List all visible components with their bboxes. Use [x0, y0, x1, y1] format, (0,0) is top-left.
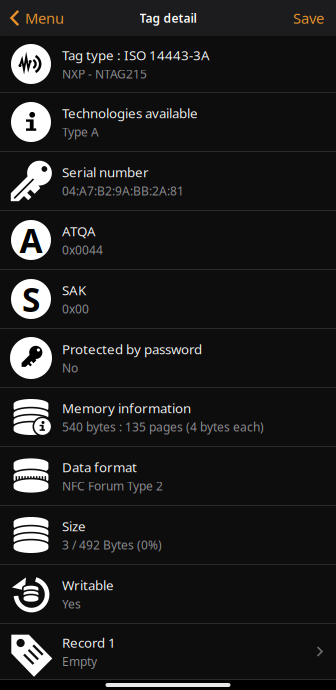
staticText: S — [22, 277, 40, 321]
button[interactable]: Data format — [0, 447, 336, 506]
staticText: Memory information — [62, 399, 191, 417]
button[interactable]: Tag type : ISO 14443-3A — [0, 36, 336, 93]
button[interactable]: Technologies available — [0, 93, 336, 152]
button[interactable]: Menu — [0, 8, 64, 28]
staticText: 0x0044 — [62, 242, 103, 258]
staticText: Empty — [62, 653, 97, 669]
button[interactable]: Save — [293, 8, 336, 28]
staticText: Writable — [62, 576, 114, 594]
button[interactable]: Protected by password — [0, 329, 336, 388]
staticText: No — [62, 360, 78, 376]
staticText: Tag detail — [139, 10, 196, 26]
staticText: Serial number — [62, 163, 149, 181]
staticText: 3 / 492 Bytes (0%) — [62, 537, 162, 553]
staticText: Size — [62, 517, 86, 535]
staticText: Tag type : ISO 14443-3A — [62, 46, 210, 64]
button[interactable]: Size — [0, 506, 336, 565]
staticText: NFC Forum Type 2 — [62, 478, 163, 494]
button[interactable]: Serial number — [0, 152, 336, 211]
staticText: Yes — [62, 596, 81, 612]
staticText: A — [19, 218, 42, 262]
staticText: ATQA — [62, 222, 96, 240]
staticText: Record 1 — [62, 634, 116, 651]
staticText: Technologies available — [62, 104, 198, 122]
button[interactable]: S — [0, 270, 336, 329]
staticText: 0x00 — [62, 301, 89, 317]
button[interactable]: Memory information — [0, 388, 336, 447]
staticText: SAK — [62, 281, 86, 299]
staticText: Save — [293, 8, 324, 28]
staticText: 540 bytes : 135 pages (4 bytes each) — [62, 419, 264, 435]
staticText: Menu — [25, 8, 64, 28]
button[interactable]: Writable — [0, 565, 336, 624]
button[interactable]: A — [0, 211, 336, 270]
staticText: Type A — [62, 124, 99, 140]
staticText: Data format — [62, 458, 137, 476]
button[interactable]: Record 1 — [0, 624, 336, 680]
staticText: Protected by password — [62, 340, 202, 358]
staticText: 04:A7:B2:9A:BB:2A:81 — [62, 183, 184, 199]
staticText: NXP - NTAG215 — [62, 66, 147, 82]
